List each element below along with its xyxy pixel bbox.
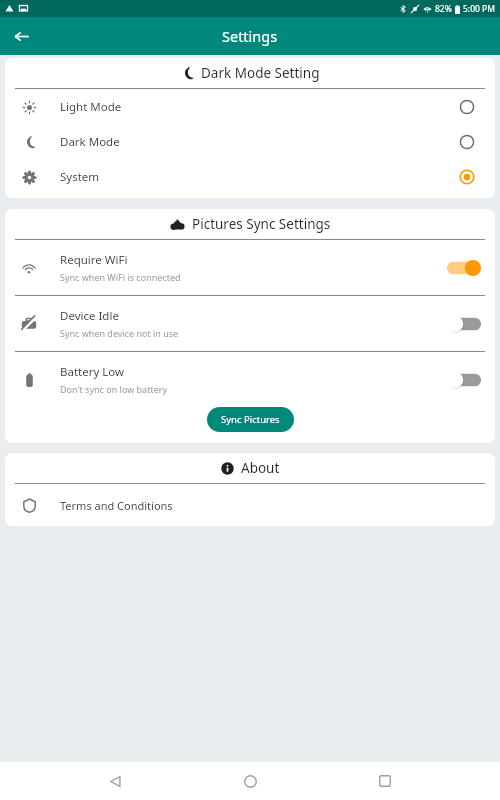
staticText: Battery Low	[60, 364, 125, 380]
button[interactable]: Home	[230, 762, 270, 800]
staticText: Terms and Conditions	[60, 498, 173, 513]
button[interactable]: Back	[95, 762, 135, 800]
button[interactable]: Terms and Conditions	[5, 484, 495, 526]
staticText: Don't sync on low battery	[60, 383, 168, 395]
button[interactable]: Light Mode	[5, 89, 495, 124]
staticText: Device Idle	[60, 308, 119, 324]
button[interactable]: Recents	[365, 762, 405, 800]
staticText: Dark Mode	[60, 134, 120, 150]
button[interactable]: Sync Pictures	[207, 407, 294, 432]
button[interactable]: Device Idle	[5, 296, 495, 351]
button[interactable]: System	[5, 159, 495, 194]
staticText: System	[60, 169, 100, 185]
staticText: About	[241, 459, 280, 477]
button[interactable]: Back	[5, 20, 37, 52]
staticText: Light Mode	[60, 99, 122, 115]
staticText: 5:00 PM	[463, 3, 495, 15]
staticText: Sync when WiFi is connected	[60, 271, 181, 283]
staticText: Dark Mode Setting	[201, 64, 320, 82]
button[interactable]: Require WiFi	[5, 240, 495, 295]
staticText: 82%	[435, 3, 452, 15]
button[interactable]: Battery Low	[5, 352, 495, 407]
staticText: Pictures Sync Settings	[192, 215, 331, 233]
button[interactable]: Dark Mode	[5, 124, 495, 159]
staticText: Require WiFi	[60, 252, 128, 268]
staticText: Settings	[222, 26, 278, 46]
staticText: Sync Pictures	[221, 413, 280, 426]
staticText: Sync when device not in use	[60, 327, 179, 339]
